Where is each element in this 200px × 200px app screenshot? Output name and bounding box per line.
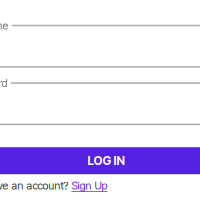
staticText: Username [0,19,8,32]
staticText: Don't have an account? [0,179,71,192]
button[interactable]: Don't have an account? [0,179,200,192]
staticText: Password [0,77,7,89]
staticText: LOG IN [87,153,124,168]
staticText: Sign Up [71,179,107,192]
button[interactable]: LOG IN [0,147,200,174]
